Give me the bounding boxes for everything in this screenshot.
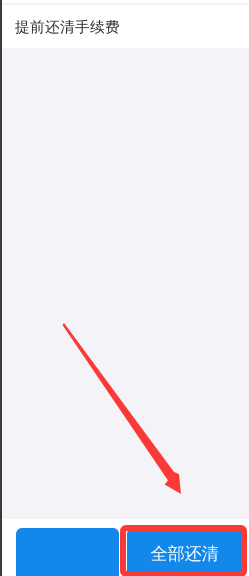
button[interactable]: 全部还清	[127, 528, 242, 576]
staticText: 全部还清	[150, 543, 218, 564]
staticText: 提前还清手续费	[15, 18, 120, 36]
button[interactable]: 部分还款	[16, 528, 119, 576]
